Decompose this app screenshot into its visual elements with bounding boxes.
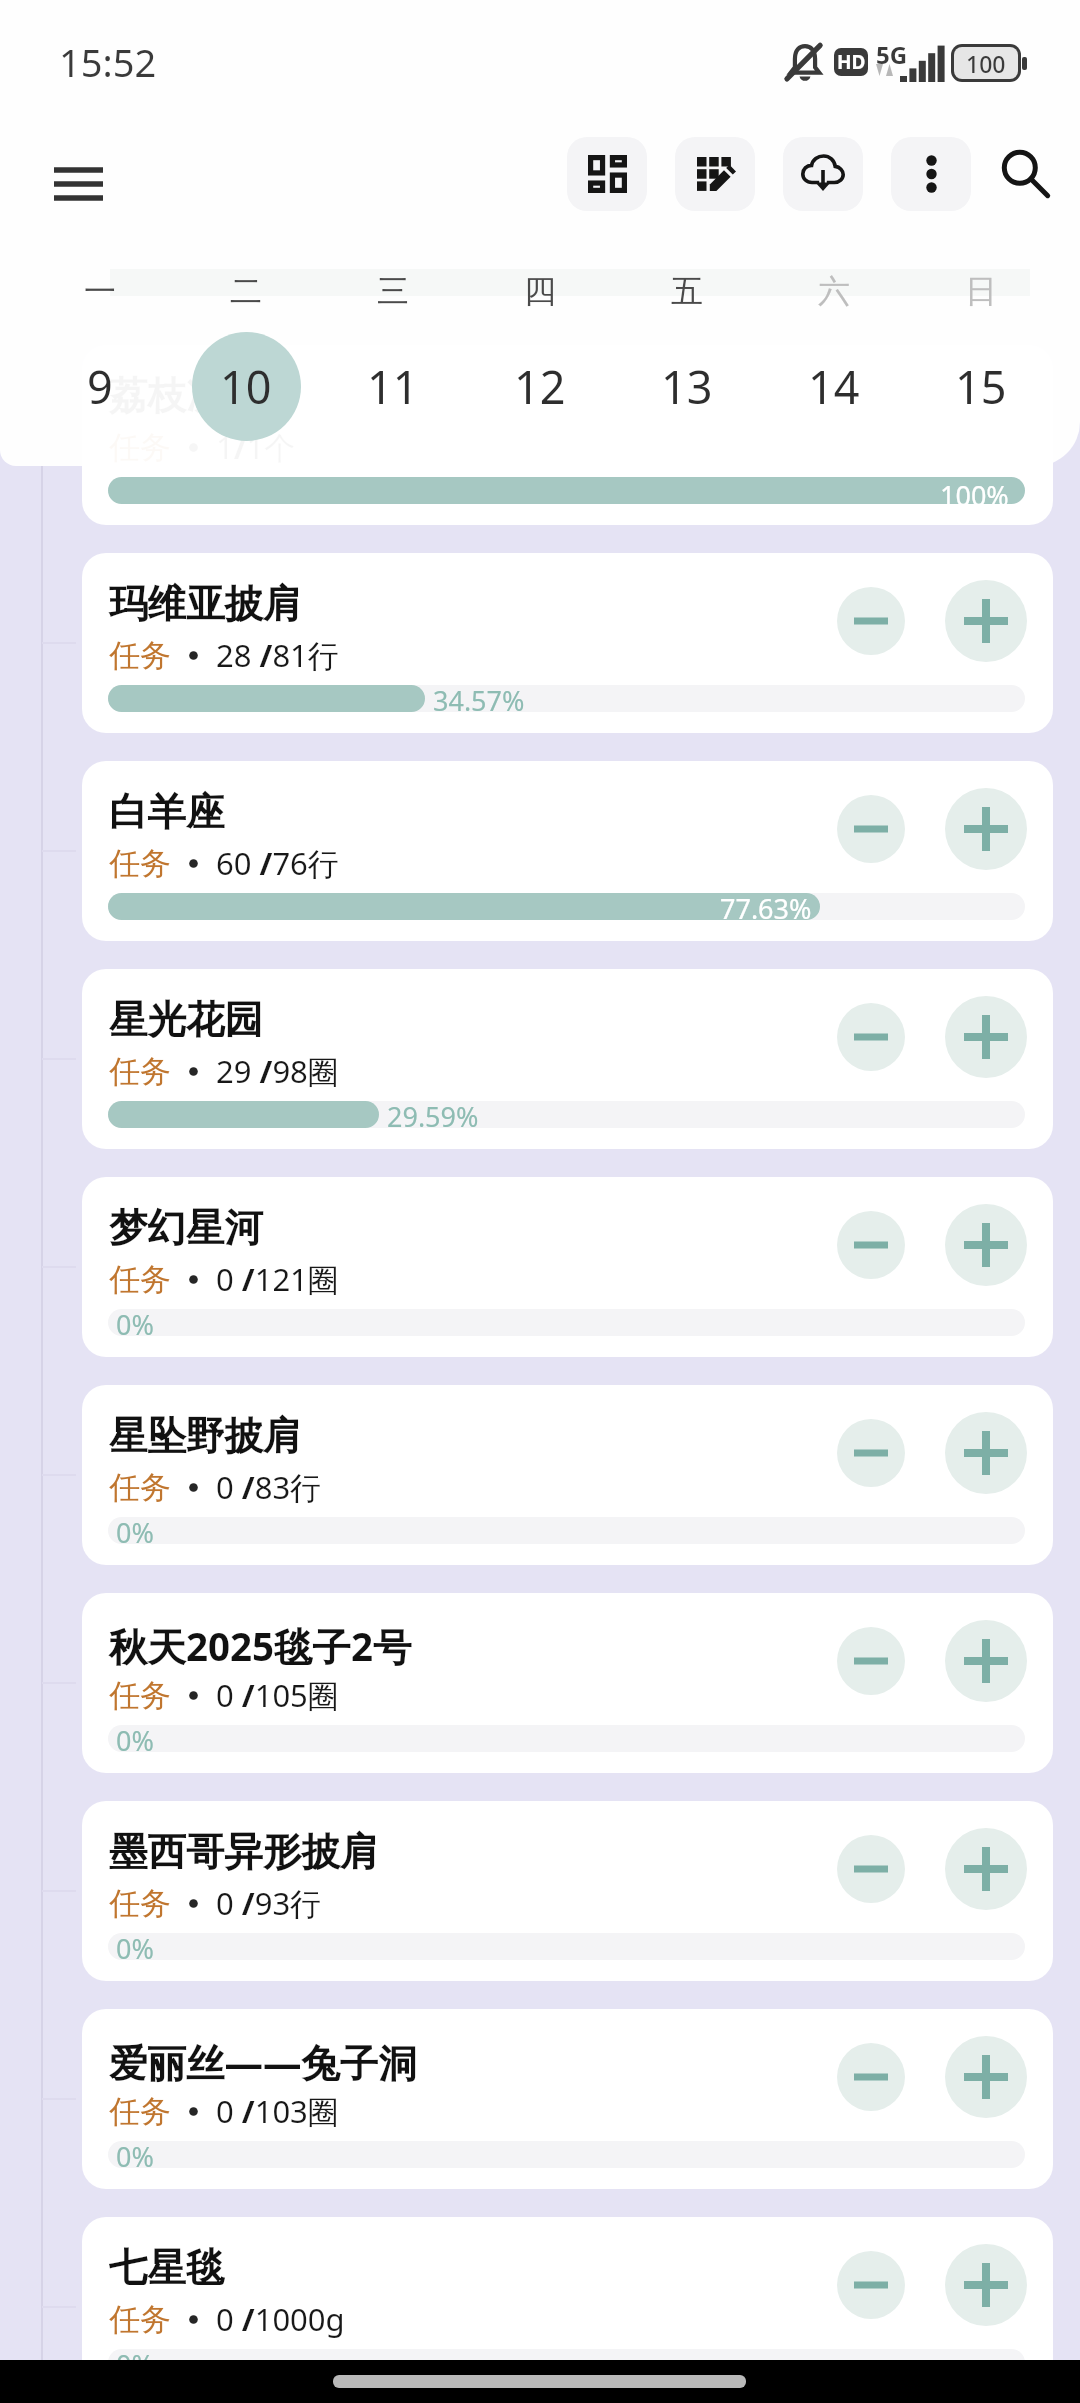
- button[interactable]: Decrease: [837, 587, 905, 655]
- staticText: 29.59%: [387, 1098, 479, 1131]
- staticText: 任务: [109, 2300, 171, 2339]
- staticText: 四: [524, 271, 556, 311]
- button[interactable]: Increase: [945, 1620, 1027, 1702]
- button[interactable]: Decrease: [837, 1211, 905, 1279]
- button[interactable]: Decrease: [837, 1835, 905, 1903]
- button[interactable]: Edit: [675, 137, 755, 211]
- staticText: 荔枝冻丸: [109, 372, 263, 421]
- button[interactable]: 9: [27, 331, 173, 441]
- button[interactable]: Decrease: [837, 795, 905, 863]
- staticText: 爱丽丝——兔子洞: [109, 2036, 418, 2089]
- staticText: 玛维亚披肩: [109, 580, 302, 629]
- staticText: 0%: [116, 1930, 154, 1963]
- button[interactable]: 15: [907, 331, 1054, 441]
- staticText: 0 /93行: [216, 1882, 322, 1924]
- staticText: 12: [514, 356, 566, 417]
- staticText: 0 /1000g: [216, 2298, 345, 2340]
- button[interactable]: Menu: [40, 142, 118, 212]
- staticText: 任务: [109, 1676, 171, 1715]
- staticText: 60 /76行: [216, 842, 339, 884]
- staticText: 三: [377, 271, 409, 311]
- button[interactable]: Increase: [945, 2036, 1027, 2118]
- button[interactable]: Decrease: [837, 1419, 905, 1487]
- staticText: 任务: [109, 428, 171, 467]
- staticText: HD: [837, 49, 866, 75]
- staticText: 0 /103圈: [216, 2090, 339, 2132]
- staticText: 任务: [109, 1260, 171, 1299]
- button[interactable]: 秋天2025毯子2号: [82, 1593, 1053, 1773]
- staticText: 29 /98圈: [216, 1050, 339, 1092]
- staticText: 星光花园: [109, 996, 263, 1045]
- staticText: 14: [808, 356, 860, 417]
- button[interactable]: Increase: [945, 1204, 1027, 1286]
- staticText: 任务: [109, 1052, 171, 1091]
- staticText: 100: [966, 48, 1006, 79]
- button[interactable]: 玛维亚披肩: [82, 553, 1053, 733]
- staticText: 任务: [109, 636, 171, 675]
- button[interactable]: 白羊座: [82, 761, 1053, 941]
- staticText: 28 /81行: [216, 634, 339, 676]
- button[interactable]: 爱丽丝——兔子洞: [82, 2009, 1053, 2189]
- button[interactable]: 墨西哥异形披肩: [82, 1801, 1053, 1981]
- button[interactable]: Increase: [945, 996, 1027, 1078]
- staticText: 一: [84, 271, 116, 311]
- staticText: 0%: [116, 1722, 154, 1755]
- staticText: 15:52: [59, 36, 157, 88]
- staticText: 0%: [116, 1514, 154, 1547]
- staticText: 9: [87, 356, 113, 417]
- staticText: 任务: [109, 2092, 171, 2131]
- staticText: 15: [955, 356, 1007, 417]
- staticText: 七星毯: [109, 2244, 225, 2293]
- staticText: 34.57%: [433, 682, 525, 715]
- staticText: 0 /121圈: [216, 1258, 339, 1300]
- staticText: 五: [671, 271, 703, 311]
- staticText: 任务: [109, 1884, 171, 1923]
- staticText: 0 /83行: [216, 1466, 322, 1508]
- button[interactable]: 10: [173, 331, 319, 441]
- staticText: 任务: [109, 1468, 171, 1507]
- staticText: 白羊座: [109, 788, 225, 837]
- button[interactable]: Decrease: [837, 2251, 905, 2319]
- button[interactable]: 12: [466, 331, 613, 441]
- button[interactable]: Increase: [945, 1412, 1027, 1494]
- staticText: 1/1个: [216, 426, 296, 468]
- staticText: 100%: [940, 477, 1009, 504]
- staticText: 任务: [109, 844, 171, 883]
- button[interactable]: 梦幻星河: [82, 1177, 1053, 1357]
- button[interactable]: Increase: [945, 1828, 1027, 1910]
- staticText: 日: [965, 271, 997, 311]
- staticText: 13: [661, 356, 713, 417]
- button[interactable]: Search: [985, 137, 1065, 211]
- staticText: 星坠野披肩: [109, 1412, 302, 1461]
- button[interactable]: 星光花园: [82, 969, 1053, 1149]
- button[interactable]: Download: [783, 137, 863, 211]
- staticText: 11: [367, 356, 419, 417]
- staticText: 六: [818, 271, 850, 311]
- staticText: 0%: [116, 2346, 154, 2379]
- staticText: 0%: [116, 1306, 154, 1339]
- staticText: 墨西哥异形披肩: [109, 1828, 379, 1877]
- staticText: 秋天2025毯子2号: [109, 1620, 412, 1673]
- button[interactable]: 11: [319, 331, 466, 441]
- staticText: 5G: [876, 38, 908, 71]
- button[interactable]: Decrease: [837, 2043, 905, 2111]
- button[interactable]: 13: [613, 331, 760, 441]
- staticText: 0%: [116, 2138, 154, 2171]
- button[interactable]: 星坠野披肩: [82, 1385, 1053, 1565]
- staticText: 梦幻星河: [109, 1204, 263, 1253]
- button[interactable]: 14: [760, 331, 907, 441]
- button[interactable]: Increase: [945, 2244, 1027, 2326]
- staticText: 77.63%: [720, 890, 812, 923]
- button[interactable]: Increase: [945, 788, 1027, 870]
- button[interactable]: Decrease: [837, 1003, 905, 1071]
- button[interactable]: Dashboard: [567, 137, 647, 211]
- button[interactable]: 七星毯: [82, 2217, 1053, 2397]
- button[interactable]: Decrease: [837, 1627, 905, 1695]
- staticText: 10: [220, 356, 272, 417]
- button[interactable]: Increase: [945, 580, 1027, 662]
- staticText: 0 /105圈: [216, 1674, 339, 1716]
- button[interactable]: More: [891, 137, 971, 211]
- staticText: 二: [230, 271, 262, 311]
